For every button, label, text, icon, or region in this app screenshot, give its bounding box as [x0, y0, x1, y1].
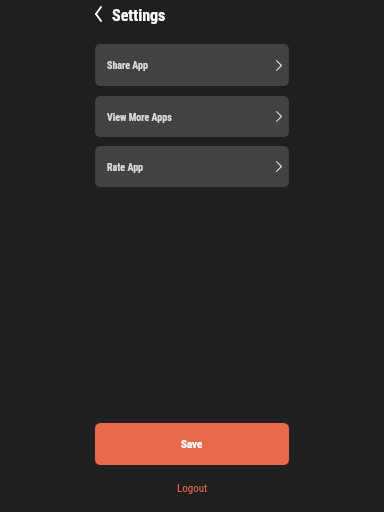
staticText: View More Apps	[107, 112, 172, 124]
staticText: Logout	[177, 482, 208, 495]
button[interactable]: View More Apps	[95, 96, 289, 137]
button[interactable]: Share App	[95, 44, 289, 86]
button[interactable]: Save	[95, 423, 289, 465]
button[interactable]: Back	[90, 4, 106, 28]
staticText: Rate App	[107, 162, 144, 174]
button[interactable]: Rate App	[95, 146, 289, 187]
staticText: Share App	[107, 60, 148, 72]
staticText: Settings	[112, 6, 166, 25]
button[interactable]: Logout	[163, 478, 222, 499]
staticText: Save	[181, 438, 203, 451]
